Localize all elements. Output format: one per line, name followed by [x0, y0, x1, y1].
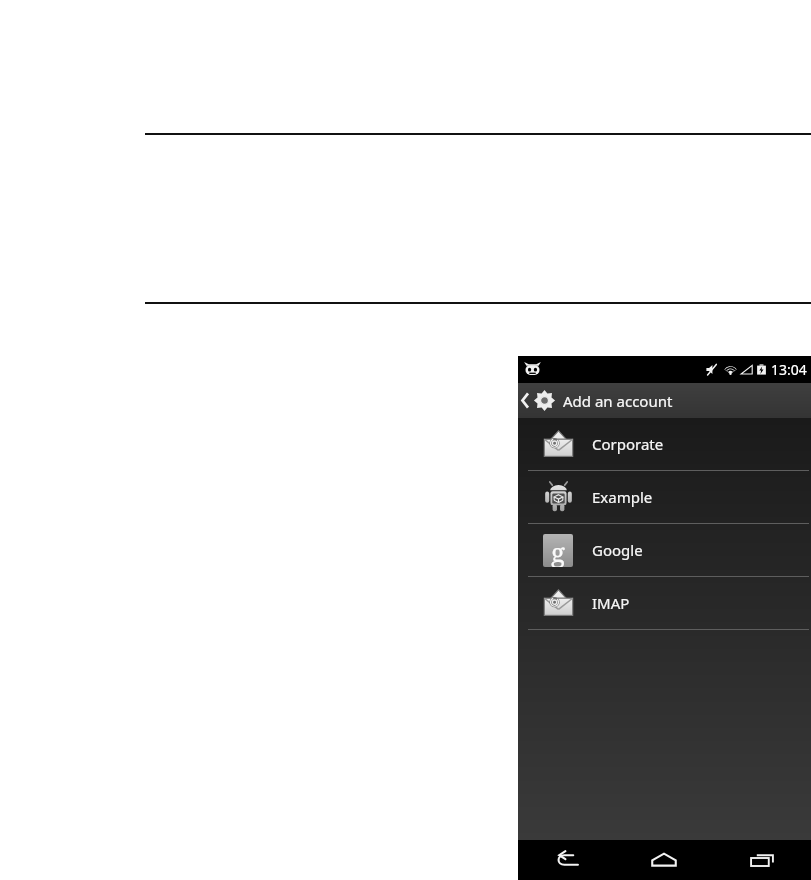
staticText: g: [551, 534, 565, 567]
staticText: Corporate: [592, 434, 664, 454]
button[interactable]: Home: [615, 840, 713, 880]
staticText: IMAP: [592, 593, 630, 613]
button[interactable]: Example: [518, 471, 811, 523]
button[interactable]: g: [518, 524, 811, 576]
button[interactable]: Corporate: [518, 418, 811, 470]
staticText: Google: [592, 540, 643, 560]
staticText: Add an account: [563, 391, 673, 411]
other: Navigate up: [521, 392, 530, 409]
staticText: 13:04: [771, 360, 807, 379]
staticText: Example: [592, 487, 653, 507]
button[interactable]: Back: [518, 840, 615, 880]
button[interactable]: IMAP: [518, 577, 811, 629]
button[interactable]: Recent apps: [713, 840, 811, 880]
button[interactable]: Navigate up: [518, 383, 811, 418]
